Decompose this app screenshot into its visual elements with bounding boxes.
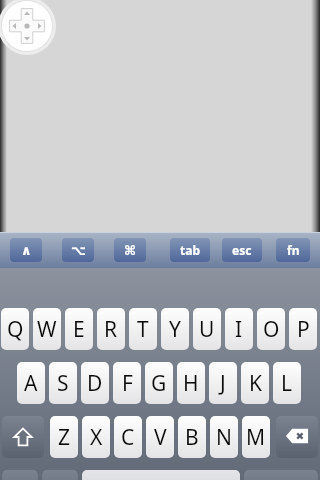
staticText: P	[297, 315, 310, 344]
button[interactable]: Y	[161, 308, 189, 350]
button[interactable]: F	[113, 362, 141, 404]
button[interactable]: T	[129, 308, 157, 350]
staticText: S	[57, 369, 69, 398]
button[interactable]: R	[97, 308, 125, 350]
staticText: Y	[169, 315, 181, 344]
button[interactable]: K	[241, 362, 269, 404]
staticText: A	[24, 369, 38, 398]
staticText: E	[73, 315, 85, 344]
staticText: R	[104, 315, 118, 344]
staticText: F	[122, 369, 133, 398]
staticText: tab	[180, 242, 200, 258]
button[interactable]: H	[177, 362, 205, 404]
button[interactable]: O	[257, 308, 285, 350]
staticText: ⌥	[71, 243, 86, 258]
staticText: esc	[232, 242, 252, 258]
button[interactable]: G	[145, 362, 173, 404]
staticText: C	[121, 423, 135, 452]
staticText: U	[199, 315, 215, 344]
button[interactable]: V	[146, 416, 174, 458]
staticText: I	[235, 315, 243, 344]
staticText: L	[281, 369, 293, 398]
staticText: M	[246, 423, 266, 452]
button[interactable]: ⌥	[62, 238, 94, 262]
button[interactable]: U	[193, 308, 221, 350]
button[interactable]: Next keyboard	[42, 470, 78, 480]
staticText: X	[90, 423, 103, 452]
staticText: D	[87, 369, 103, 398]
staticText: T	[137, 315, 149, 344]
button[interactable]: S	[49, 362, 77, 404]
button[interactable]: B	[178, 416, 206, 458]
button[interactable]: ⌘	[114, 238, 146, 262]
staticText: W	[37, 315, 57, 344]
button[interactable]: space	[82, 470, 240, 480]
button[interactable]: fn	[276, 238, 310, 262]
staticText: N	[216, 423, 232, 452]
staticText: J	[220, 369, 226, 398]
staticText: K	[249, 369, 262, 398]
button[interactable]: Z	[50, 416, 78, 458]
button[interactable]: D	[81, 362, 109, 404]
staticText: V	[154, 423, 167, 452]
button[interactable]: W	[33, 308, 61, 350]
button[interactable]: A	[17, 362, 45, 404]
staticText: B	[185, 423, 199, 452]
button[interactable]: P	[289, 308, 317, 350]
staticText: G	[151, 369, 167, 398]
button[interactable]: L	[273, 362, 301, 404]
button[interactable]: M	[242, 416, 270, 458]
staticText: Q	[7, 315, 24, 344]
button[interactable]: tab	[170, 238, 210, 262]
button[interactable]: N	[210, 416, 238, 458]
staticText: Z	[58, 423, 71, 452]
staticText: O	[263, 315, 280, 344]
button[interactable]: Backspace	[276, 416, 318, 458]
button[interactable]: I	[225, 308, 253, 350]
button[interactable]: J	[209, 362, 237, 404]
button[interactable]: C	[114, 416, 142, 458]
button[interactable]: Directional pad	[0, 0, 56, 55]
button[interactable]: X	[82, 416, 110, 458]
button[interactable]: return	[244, 470, 318, 480]
staticText: ∧	[21, 243, 32, 258]
button[interactable]: Q	[1, 308, 29, 350]
button[interactable]: esc	[222, 238, 262, 262]
button[interactable]: Shift	[2, 416, 44, 458]
button[interactable]: ∧	[10, 238, 42, 262]
staticText: H	[183, 369, 199, 398]
button[interactable]: 123	[2, 470, 38, 480]
button[interactable]: E	[65, 308, 93, 350]
staticText: fn	[287, 242, 300, 258]
staticText: ⌘	[124, 243, 137, 258]
